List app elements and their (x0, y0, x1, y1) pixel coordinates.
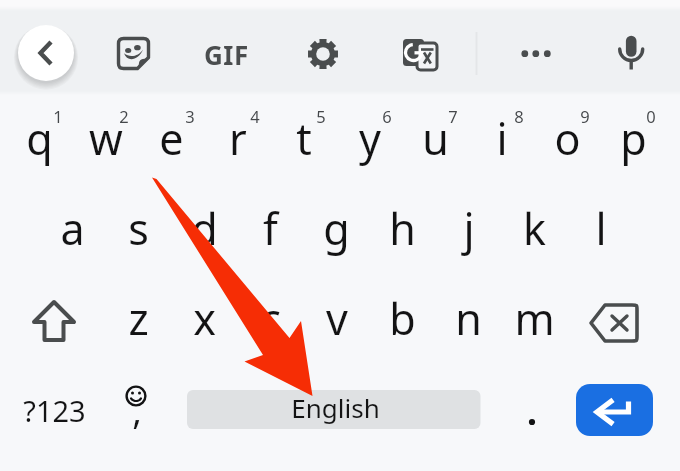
button[interactable]: s (106, 183, 172, 273)
staticText: , (132, 386, 142, 435)
staticText: f (263, 199, 278, 258)
staticText: 1 (53, 105, 63, 127)
button[interactable]: Back (18, 25, 74, 81)
staticText: d (191, 199, 218, 258)
button[interactable]: d (172, 183, 238, 273)
staticText: English (291, 390, 380, 425)
button[interactable]: y (337, 93, 403, 183)
staticText: l (595, 199, 607, 258)
button[interactable]: q (7, 93, 73, 183)
button[interactable]: Space, English (181, 363, 486, 453)
staticText: s (128, 199, 149, 258)
button[interactable]: z (106, 273, 172, 363)
staticText: a (60, 199, 85, 258)
button[interactable]: r (205, 93, 271, 183)
button[interactable]: c (238, 273, 304, 363)
staticText: v (326, 289, 348, 348)
button[interactable]: f (238, 183, 304, 273)
button[interactable]: Enter (567, 363, 666, 453)
button[interactable]: p (600, 93, 666, 183)
staticText: o (554, 109, 581, 168)
button[interactable]: n (435, 273, 501, 363)
button[interactable]: x (172, 273, 238, 363)
staticText: ?123 (23, 391, 86, 430)
button[interactable]: u (402, 93, 468, 183)
staticText: b (389, 289, 416, 348)
staticText: i (496, 109, 508, 168)
staticText: j (463, 199, 475, 258)
button[interactable]: a (40, 183, 106, 273)
button[interactable]: GIF keyboard (198, 26, 254, 82)
staticText: x (193, 289, 216, 348)
button[interactable]: g (304, 183, 370, 273)
staticText: q (26, 109, 53, 168)
button[interactable]: b (369, 273, 435, 363)
button[interactable]: Emoji and comma (106, 363, 172, 453)
staticText: 6 (382, 105, 392, 127)
staticText: 3 (185, 105, 195, 127)
button[interactable]: i (468, 93, 534, 183)
button[interactable]: m (501, 273, 567, 363)
button[interactable]: o (534, 93, 600, 183)
staticText: r (229, 109, 247, 168)
staticText: h (389, 199, 416, 258)
staticText: t (296, 109, 312, 168)
staticText: 7 (448, 105, 458, 127)
staticText: m (514, 289, 555, 348)
staticText: e (159, 109, 184, 168)
staticText: y (359, 109, 381, 168)
staticText: g (323, 199, 350, 258)
button[interactable]: Translate (389, 26, 445, 82)
button[interactable]: Symbols (7, 363, 106, 453)
staticText: p (620, 109, 647, 168)
staticText: 8 (514, 105, 524, 127)
button[interactable]: Backspace (567, 273, 666, 363)
button[interactable]: e (139, 93, 205, 183)
staticText: 9 (580, 105, 590, 127)
staticText: 4 (250, 105, 260, 127)
staticText: 5 (316, 105, 326, 127)
button[interactable]: Settings (295, 26, 351, 82)
staticText: k (523, 199, 546, 258)
staticText: w (89, 109, 123, 168)
button[interactable]: Period (501, 363, 567, 453)
button[interactable]: l (567, 183, 633, 273)
staticText: 0 (646, 105, 656, 127)
button[interactable]: t (271, 93, 337, 183)
staticText: z (128, 289, 149, 348)
button[interactable]: Shift (7, 273, 106, 363)
staticText: u (422, 109, 449, 168)
staticText: 2 (119, 105, 129, 127)
button[interactable]: Stickers (104, 26, 160, 82)
staticText: GIF (204, 37, 249, 72)
button[interactable]: k (501, 183, 567, 273)
button[interactable]: j (435, 183, 501, 273)
button[interactable]: w (73, 93, 139, 183)
staticText: n (455, 289, 482, 348)
button[interactable]: h (369, 183, 435, 273)
staticText: c (260, 289, 281, 348)
button[interactable]: Voice input (603, 26, 659, 82)
button[interactable]: More options (508, 26, 564, 82)
button[interactable]: v (304, 273, 370, 363)
